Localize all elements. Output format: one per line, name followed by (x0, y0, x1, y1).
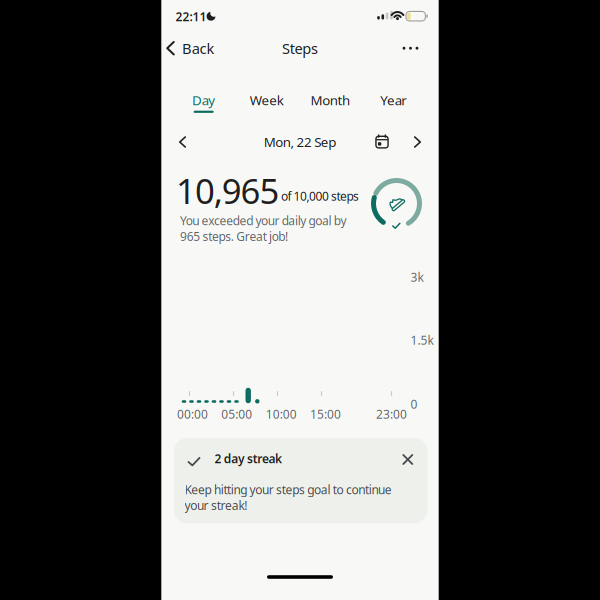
button[interactable]: Previous day (172, 132, 192, 152)
staticText: 22:11 (175, 8, 206, 24)
button[interactable]: Month (308, 86, 352, 114)
button[interactable]: Day (182, 86, 226, 114)
staticText: Steps (282, 38, 318, 58)
staticText: Back (182, 38, 214, 58)
button[interactable]: More options (399, 39, 422, 58)
button[interactable]: Year (372, 86, 416, 114)
staticText: 23:00 (376, 406, 407, 422)
staticText: 10,965 (176, 167, 279, 213)
staticText: of 10,000 steps (281, 188, 359, 204)
staticText: 1.5k (410, 332, 433, 348)
button[interactable]: Dismiss streak message (398, 449, 418, 469)
staticText: 15:00 (310, 406, 341, 422)
button[interactable]: Back (163, 39, 219, 58)
staticText: You exceeded your daily goal by 965 step… (180, 213, 346, 244)
staticText: 05:00 (221, 406, 252, 422)
staticText: 3k (410, 269, 423, 285)
staticText: 2 day streak (214, 450, 282, 466)
staticText: 10:00 (266, 406, 297, 422)
staticText: Keep hitting your steps goal to continue… (184, 482, 392, 513)
staticText: Week (250, 91, 284, 109)
staticText: Mon, 22 Sep (264, 133, 336, 151)
staticText: Year (380, 91, 407, 109)
staticText: Month (310, 91, 350, 109)
button[interactable]: Choose date (371, 131, 393, 153)
staticText: 00:00 (177, 406, 208, 422)
button[interactable]: Next day (407, 132, 427, 152)
staticText: Day (192, 91, 215, 109)
button[interactable]: Week (245, 86, 289, 114)
staticText: 0 (410, 396, 417, 412)
